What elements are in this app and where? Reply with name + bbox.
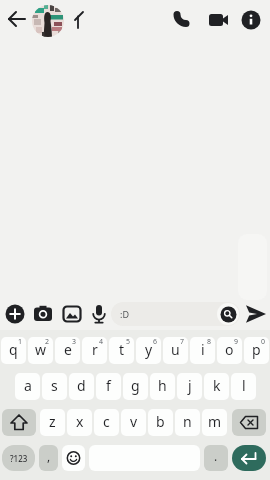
staticText: j bbox=[188, 376, 192, 395]
staticText: y bbox=[145, 340, 153, 359]
button[interactable]: x bbox=[67, 409, 92, 436]
button[interactable]: w bbox=[28, 337, 53, 364]
staticText: m bbox=[208, 412, 222, 431]
button[interactable]: o bbox=[217, 337, 242, 364]
button[interactable]: d bbox=[69, 373, 94, 400]
staticText: 0 bbox=[261, 337, 266, 347]
staticText: a bbox=[24, 376, 32, 395]
button[interactable]: i bbox=[190, 337, 215, 364]
staticText: w bbox=[35, 340, 47, 359]
button[interactable]: e bbox=[55, 337, 80, 364]
staticText: x bbox=[76, 412, 84, 431]
button[interactable] bbox=[32, 5, 64, 37]
button[interactable]: m bbox=[202, 409, 227, 436]
button[interactable]: . bbox=[204, 445, 228, 471]
staticText: 7 bbox=[180, 337, 185, 347]
staticText: c bbox=[103, 412, 110, 431]
button[interactable]: g bbox=[123, 373, 148, 400]
button[interactable]: y bbox=[136, 337, 161, 364]
button[interactable]: j bbox=[177, 373, 202, 400]
button[interactable]: l bbox=[231, 373, 256, 400]
staticText: , bbox=[47, 448, 51, 464]
staticText: u bbox=[171, 340, 180, 359]
staticText: k bbox=[213, 376, 221, 395]
staticText: 2 bbox=[45, 337, 50, 347]
staticText: v bbox=[130, 412, 138, 431]
button[interactable] bbox=[232, 409, 266, 436]
button[interactable]: q bbox=[1, 337, 26, 364]
staticText: . bbox=[214, 448, 218, 464]
staticText: 6 bbox=[153, 337, 158, 347]
button[interactable]: :D bbox=[111, 302, 240, 326]
button[interactable] bbox=[232, 445, 266, 471]
staticText: b bbox=[156, 412, 165, 431]
staticText: l bbox=[242, 376, 246, 395]
button[interactable]: z bbox=[40, 409, 65, 436]
staticText: z bbox=[49, 412, 56, 431]
staticText: 9 bbox=[234, 337, 239, 347]
staticText: t bbox=[119, 340, 125, 359]
staticText: d bbox=[77, 376, 86, 395]
staticText: p bbox=[252, 340, 261, 359]
staticText: 4 bbox=[99, 337, 104, 347]
staticText: 1 bbox=[18, 337, 23, 347]
staticText: r bbox=[92, 340, 98, 359]
staticText: i bbox=[201, 340, 205, 359]
button[interactable] bbox=[2, 409, 36, 436]
staticText: h bbox=[158, 376, 167, 395]
button[interactable]: n bbox=[175, 409, 200, 436]
staticText: f bbox=[106, 376, 111, 395]
staticText: :D bbox=[120, 308, 129, 320]
button[interactable]: c bbox=[94, 409, 119, 436]
button[interactable]: h bbox=[150, 373, 175, 400]
button[interactable]: v bbox=[121, 409, 146, 436]
button[interactable]: f bbox=[96, 373, 121, 400]
button[interactable]: r bbox=[82, 337, 107, 364]
staticText: q bbox=[9, 340, 18, 359]
staticText: 8 bbox=[207, 337, 212, 347]
staticText: 3 bbox=[72, 337, 77, 347]
button[interactable] bbox=[171, 9, 193, 31]
button[interactable] bbox=[62, 304, 82, 324]
button[interactable]: a bbox=[15, 373, 40, 400]
button[interactable]: t bbox=[109, 337, 134, 364]
button[interactable]: ?123 bbox=[2, 445, 35, 471]
staticText: e bbox=[64, 340, 72, 359]
staticText: n bbox=[183, 412, 192, 431]
button[interactable]: , bbox=[39, 445, 58, 471]
staticText: ?123 bbox=[10, 453, 28, 464]
button[interactable]: u bbox=[163, 337, 188, 364]
button[interactable]: s bbox=[42, 373, 67, 400]
button[interactable] bbox=[244, 303, 268, 325]
button[interactable]: b bbox=[148, 409, 173, 436]
staticText: o bbox=[225, 340, 234, 359]
button[interactable] bbox=[207, 9, 229, 31]
button[interactable] bbox=[89, 303, 109, 325]
staticText: g bbox=[131, 376, 140, 395]
button[interactable]: k bbox=[204, 373, 229, 400]
staticText: 5 bbox=[126, 337, 131, 347]
button[interactable] bbox=[62, 445, 85, 471]
button[interactable] bbox=[240, 9, 262, 31]
button[interactable] bbox=[5, 304, 25, 324]
button[interactable]: p bbox=[244, 337, 269, 364]
button[interactable] bbox=[4, 8, 30, 32]
staticText: s bbox=[51, 376, 58, 395]
button[interactable] bbox=[33, 304, 53, 324]
